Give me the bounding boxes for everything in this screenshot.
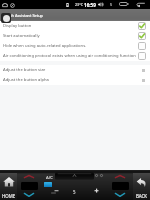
staticText: 23°C xyxy=(75,2,84,7)
staticText: 5 xyxy=(110,2,113,7)
button[interactable]: Decrease fan speed xyxy=(54,188,59,193)
button[interactable]: Air flow xyxy=(55,172,94,180)
staticText: Air conditioning protocol exists when us… xyxy=(3,53,136,59)
staticText: Display button xyxy=(3,23,32,29)
staticText: Hide when using auto-related application… xyxy=(3,43,87,49)
button[interactable]: Temperature down xyxy=(24,193,34,197)
button[interactable]: A/C xyxy=(44,182,52,187)
button[interactable]: Start automatically xyxy=(0,31,150,41)
button[interactable]: Home xyxy=(0,173,17,200)
button[interactable]: Increase fan speed xyxy=(94,188,99,193)
staticText: Adjust the button size xyxy=(3,67,46,73)
button[interactable]: Temperature up xyxy=(24,175,34,178)
button[interactable]: Adjust the button size xyxy=(0,65,150,75)
staticText: HOME xyxy=(2,193,16,199)
button[interactable]: Adjust the button alpha xyxy=(0,75,150,85)
button[interactable]: App icon xyxy=(1,13,11,23)
button[interactable]: Mode xyxy=(51,192,56,194)
button[interactable]: Temperature down xyxy=(115,193,125,197)
staticText: 16:59 xyxy=(84,2,96,8)
staticText: Touch Assistant Setup xyxy=(3,13,43,18)
other: Home xyxy=(3,176,15,188)
button[interactable]: Display button xyxy=(0,21,150,31)
button[interactable]: Temperature up xyxy=(115,175,125,178)
button[interactable]: Air conditioning protocol exists when us… xyxy=(0,51,150,61)
staticText: BACK xyxy=(136,193,148,199)
button[interactable]: Hide when using auto-related application… xyxy=(0,41,150,51)
staticText: Start automatically xyxy=(3,33,40,39)
staticText: A/C xyxy=(46,175,53,181)
button[interactable]: Back xyxy=(133,173,150,200)
other: Back xyxy=(136,177,147,188)
staticText: 5 xyxy=(73,189,76,195)
staticText: Adjust the button alpha xyxy=(3,77,49,83)
